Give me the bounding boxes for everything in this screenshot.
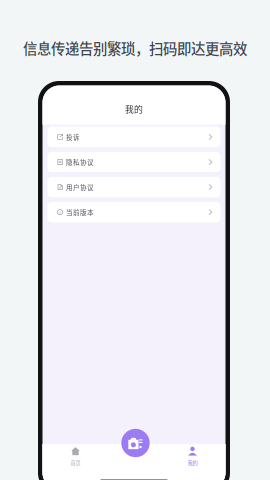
staticText: 我的	[125, 102, 143, 115]
button[interactable]: 首页	[54, 444, 96, 475]
button[interactable]: 投诉	[47, 127, 220, 147]
button[interactable]: 当前版本	[47, 202, 220, 222]
staticText: 信息传递告别繁琐，扫码即达更高效	[23, 38, 247, 58]
button[interactable]: 隐私协议	[47, 152, 220, 172]
staticText: 首页	[70, 459, 80, 466]
staticText: 当前版本	[66, 207, 94, 217]
button[interactable]: 扫一扫	[121, 429, 150, 457]
staticText: 用户协议	[66, 182, 94, 192]
staticText: 投诉	[66, 132, 80, 142]
staticText: 隐私协议	[66, 157, 94, 167]
button[interactable]: 我的	[171, 444, 213, 475]
button[interactable]: 用户协议	[47, 177, 220, 197]
staticText: 我的	[187, 459, 197, 466]
